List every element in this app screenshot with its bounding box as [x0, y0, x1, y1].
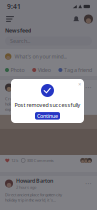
staticText: 12 k: [11, 158, 18, 163]
staticText: 2 hours ago: [16, 185, 36, 190]
button[interactable]: Like: [5, 158, 18, 163]
button[interactable]: Profile: [81, 14, 93, 23]
button[interactable]: Tag a friend: [58, 66, 92, 74]
staticText: Newsfeed: [5, 27, 31, 34]
button[interactable]: Video: [32, 66, 51, 74]
staticText: Photo: [11, 66, 25, 74]
staticText: 300 Comments: [27, 158, 54, 163]
staticText: Crush ancient place forgotten city holid…: [5, 96, 62, 112]
staticText: ✕: [78, 82, 81, 86]
staticText: Post removed successfully: [14, 101, 80, 109]
button[interactable]: What's on your mind...: [0, 49, 97, 64]
staticText: Direct ancient place forgotten city holi…: [5, 192, 62, 203]
staticText: Video: [38, 66, 51, 74]
button[interactable]: Search...: [0, 36, 97, 46]
staticText: Continue: [37, 112, 58, 119]
button[interactable]: 300 Comments: [18, 158, 54, 163]
staticText: ⋯: [85, 84, 92, 91]
staticText: Tag a friend: [64, 66, 92, 74]
button[interactable]: Photo: [5, 66, 25, 74]
button[interactable]: Menu: [4, 14, 16, 24]
staticText: 9:41: [7, 2, 21, 11]
staticText: Howard Barton: [16, 177, 53, 184]
staticText: ⋯: [85, 180, 92, 187]
button[interactable]: Continue: [35, 112, 60, 120]
staticText: Melissa Simpson: [16, 81, 60, 88]
staticText: What's on your mind...: [14, 53, 66, 60]
button[interactable]: Close: [75, 79, 84, 89]
button[interactable]: Notifications: [71, 14, 81, 24]
staticText: Search...: [10, 37, 30, 45]
